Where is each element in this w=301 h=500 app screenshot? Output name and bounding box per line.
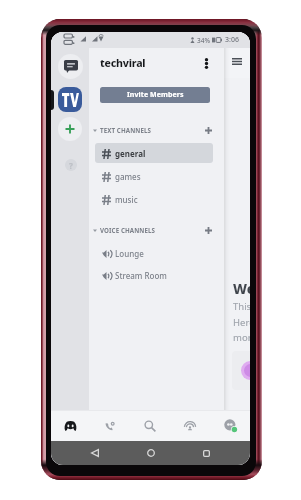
button[interactable]: VOICE CHANNELS xyxy=(89,222,224,238)
button[interactable]: games xyxy=(95,166,213,186)
button[interactable]: Search xyxy=(130,410,170,441)
button[interactable]: general xyxy=(95,143,213,163)
button[interactable]: Direct messages xyxy=(58,54,83,79)
staticText: general xyxy=(115,148,146,159)
staticText: techviral xyxy=(100,56,146,70)
button[interactable]: Invite Members xyxy=(100,87,210,103)
staticText: more. xyxy=(233,331,250,344)
button[interactable]: Back xyxy=(85,443,105,463)
button[interactable]: Create channel xyxy=(200,122,216,138)
staticText: Here are xyxy=(233,316,250,329)
staticText: VOICE CHANNELS xyxy=(100,226,156,234)
staticText: ? xyxy=(69,160,73,171)
button[interactable]: You xyxy=(210,410,250,441)
button[interactable]: Create channel xyxy=(200,222,216,238)
button[interactable]: More options xyxy=(198,55,214,71)
button[interactable]: Add a server xyxy=(58,117,82,141)
button[interactable]: Home xyxy=(51,410,90,441)
staticText: music xyxy=(115,194,138,205)
button[interactable]: Stream Room xyxy=(95,265,213,285)
button[interactable]: Lounge xyxy=(95,243,213,263)
button[interactable]: Recent apps xyxy=(196,443,216,463)
button[interactable]: Explore public servers xyxy=(65,159,77,171)
staticText: Lounge xyxy=(115,248,144,259)
staticText: games xyxy=(115,171,141,182)
button[interactable]: Home xyxy=(141,443,161,463)
staticText: Welcome xyxy=(233,279,250,298)
button[interactable]: music xyxy=(95,189,213,209)
staticText: 34% xyxy=(197,36,210,45)
button[interactable]: Mentions xyxy=(170,410,210,441)
staticText: 3:06 xyxy=(225,35,239,45)
staticText: Invite Members xyxy=(127,90,184,100)
staticText: Stream Room xyxy=(115,270,167,281)
staticText: This is the xyxy=(233,300,250,313)
staticText: TEXT CHANNELS xyxy=(100,126,152,134)
button[interactable]: Calls xyxy=(90,410,130,441)
button[interactable]: TEXT CHANNELS xyxy=(89,122,224,138)
button[interactable]: techviral server xyxy=(58,87,82,112)
button[interactable]: Members xyxy=(229,53,245,69)
